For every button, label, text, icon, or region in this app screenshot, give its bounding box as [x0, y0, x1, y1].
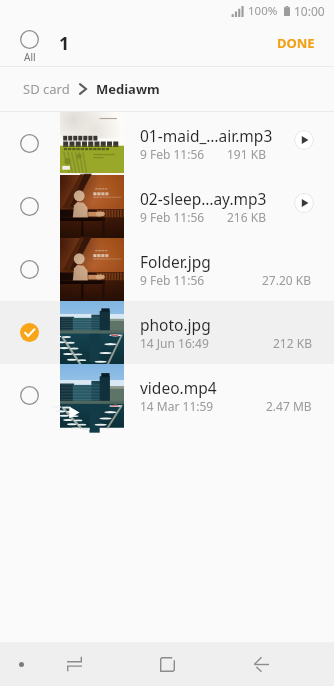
staticText: 100% [248, 3, 278, 19]
button[interactable]: Play [294, 193, 314, 213]
staticText: 14 Jun 16:49 [140, 335, 209, 351]
staticText: 02-sleep…ay.mp3 [140, 188, 267, 209]
button[interactable]: Play [294, 130, 314, 150]
button[interactable]: Select [0, 175, 334, 238]
staticText: 191 KB [227, 146, 266, 162]
staticText: SD card [23, 80, 70, 98]
button[interactable]: Mediawm [96, 80, 160, 98]
button[interactable]: Select [20, 134, 39, 153]
button[interactable]: Hide navigation bar [7, 650, 35, 678]
button[interactable]: Select [20, 323, 39, 342]
staticText: All [24, 50, 36, 64]
staticText: 216 KB [227, 209, 266, 225]
button[interactable]: All [13, 24, 46, 66]
staticText: 9 Feb 11:56 [140, 146, 205, 162]
staticText: 2.47 MB [266, 398, 312, 414]
button[interactable]: Back [241, 644, 281, 684]
staticText: photo.jpg [140, 314, 211, 335]
staticText: Mediawm [96, 80, 160, 98]
button[interactable]: Select [0, 112, 334, 175]
button[interactable]: Select [0, 301, 334, 364]
staticText: 14 Mar 11:59 [140, 398, 214, 414]
staticText: Folder.jpg [140, 251, 211, 272]
button[interactable]: Home [147, 644, 187, 684]
staticText: 1 [59, 31, 70, 56]
button[interactable]: Recent apps [54, 644, 94, 684]
button[interactable]: SD card [23, 80, 70, 98]
staticText: 9 Feb 11:56 [140, 272, 205, 288]
button[interactable]: Select [20, 197, 39, 216]
staticText: 01-maid_…air.mp3 [140, 125, 273, 146]
button[interactable]: Select [20, 260, 39, 279]
button[interactable]: Select [0, 238, 334, 301]
button[interactable]: Select [0, 364, 334, 427]
staticText: 27.20 KB [262, 272, 312, 288]
button[interactable]: Select [20, 386, 39, 405]
staticText: 10:00 [294, 3, 325, 19]
staticText: 9 Feb 11:56 [140, 209, 205, 225]
staticText: 212 KB [273, 335, 312, 351]
staticText: video.mp4 [140, 377, 217, 398]
staticText: DONE [277, 34, 315, 52]
button[interactable]: DONE [259, 24, 334, 66]
